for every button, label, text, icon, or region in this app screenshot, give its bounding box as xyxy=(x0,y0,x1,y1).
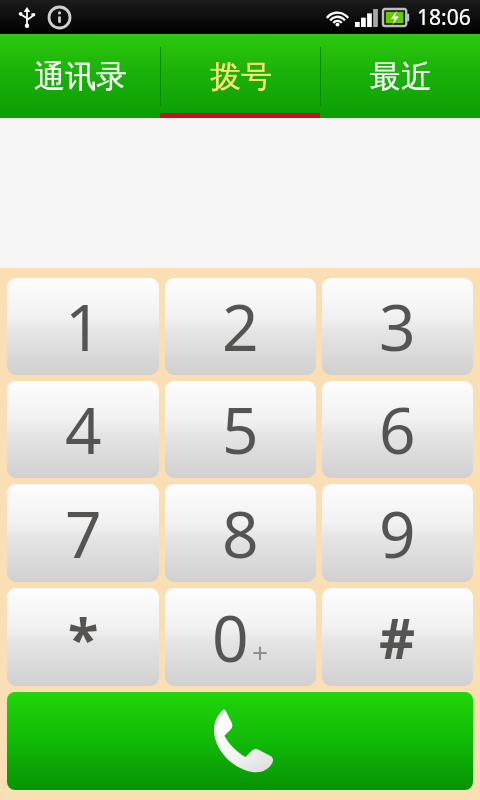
button[interactable]: 7 xyxy=(7,484,159,582)
button[interactable]: 1 xyxy=(7,278,159,375)
other: USB connected xyxy=(16,6,38,28)
button[interactable]: Call xyxy=(7,692,473,790)
button[interactable]: # xyxy=(322,588,473,686)
button[interactable]: 2 xyxy=(165,278,316,375)
staticText: + xyxy=(252,633,269,671)
button[interactable]: 4 xyxy=(7,381,159,478)
staticText: 6 xyxy=(379,386,416,473)
staticText: 8 xyxy=(222,490,259,577)
other: Info xyxy=(47,5,72,30)
button[interactable]: 最近 xyxy=(321,34,480,118)
staticText: 5 xyxy=(222,386,259,473)
button[interactable]: 5 xyxy=(165,381,316,478)
staticText: 9 xyxy=(379,490,416,577)
staticText: * xyxy=(68,599,99,675)
staticText: 18:06 xyxy=(417,3,471,32)
staticText: 7 xyxy=(65,490,102,577)
button[interactable]: 拨号 xyxy=(161,34,320,118)
staticText: # xyxy=(379,599,416,675)
staticText: 3 xyxy=(379,283,416,370)
button[interactable]: 通讯录 xyxy=(0,34,160,118)
staticText: 最近 xyxy=(370,57,432,96)
button[interactable]: 6 xyxy=(322,381,473,478)
staticText: 通讯录 xyxy=(34,57,127,96)
button[interactable]: 3 xyxy=(322,278,473,375)
staticText: 0 xyxy=(212,594,249,681)
staticText: 2 xyxy=(222,283,259,370)
button[interactable]: * xyxy=(7,588,159,686)
button[interactable]: 0 xyxy=(165,588,316,686)
button[interactable]: 8 xyxy=(165,484,316,582)
staticText: 拨号 xyxy=(210,57,272,96)
staticText: 1 xyxy=(65,283,102,370)
staticText: 4 xyxy=(65,386,102,473)
button[interactable]: 9 xyxy=(322,484,473,582)
